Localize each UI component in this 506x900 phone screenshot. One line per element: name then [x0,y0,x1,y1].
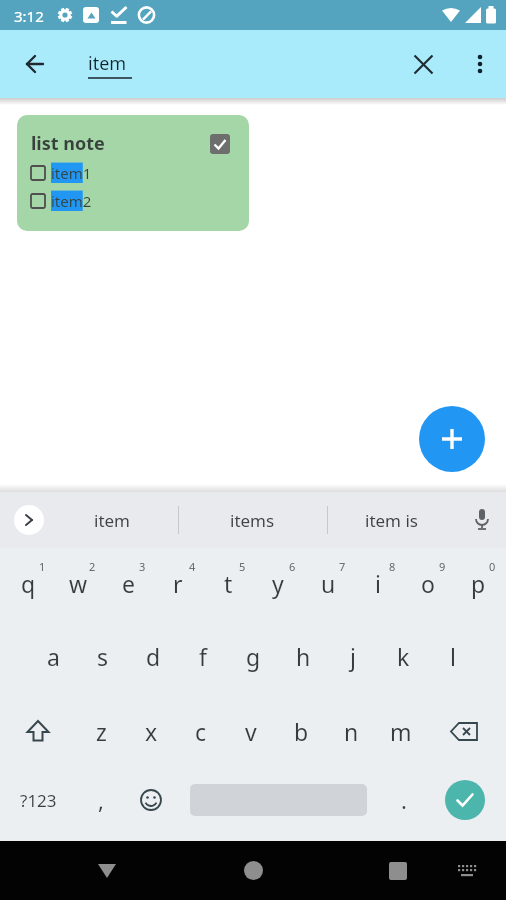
button[interactable] [376,841,420,900]
staticText: d [146,641,161,672]
button[interactable] [419,406,485,472]
staticText: p [471,568,486,599]
button[interactable]: d [128,625,178,687]
button[interactable]: l [428,625,478,687]
button[interactable]: . [379,769,429,831]
staticText: . [401,785,407,815]
button[interactable]: n [326,700,376,762]
staticText: c [195,716,207,747]
staticText: 9 [439,559,446,574]
staticText: i [375,568,381,599]
button[interactable]: x [126,700,176,762]
button[interactable]: ?123 [0,769,76,831]
staticText: v [245,716,257,747]
staticText: r [173,568,183,599]
staticText: 1 [39,559,46,574]
button[interactable]: g [228,625,278,687]
button[interactable]: s [78,625,128,687]
staticText: 3 [139,559,146,574]
staticText: m [390,716,412,747]
staticText: 2 [89,559,96,574]
button[interactable]: w [53,552,103,614]
button[interactable]: o [403,552,453,614]
staticText: k [397,641,410,672]
button[interactable] [0,700,76,762]
staticText: item is [365,509,418,532]
button[interactable] [126,769,176,831]
button[interactable] [14,505,44,535]
button[interactable]: z [76,700,126,762]
staticText: a [47,641,60,672]
button[interactable]: , [76,769,126,831]
button[interactable]: y [253,552,303,614]
button[interactable]: q [3,552,53,614]
button[interactable] [445,780,485,820]
staticText: item1 [51,163,92,183]
staticText: f [199,641,207,672]
staticText: w [69,568,88,599]
staticText: 5 [239,559,246,574]
staticText: 7 [339,559,346,574]
button[interactable] [231,841,275,900]
button[interactable]: c [176,700,226,762]
button[interactable]: item [62,492,162,548]
button[interactable]: e [103,552,153,614]
staticText: y [272,568,284,599]
button[interactable]: k [378,625,428,687]
staticText: item2 [51,191,92,211]
button[interactable]: p [453,552,503,614]
button[interactable]: b [276,700,326,762]
staticText: 0 [489,559,496,574]
staticText: n [344,716,359,747]
staticText: , [98,785,104,815]
staticText: x [145,716,158,747]
button[interactable] [426,700,502,762]
button[interactable]: items [202,492,302,548]
button[interactable]: i [353,552,403,614]
staticText: j [350,641,356,672]
staticText: h [296,641,311,672]
button[interactable]: a [28,625,78,687]
button[interactable]: m [376,700,426,762]
staticText: s [97,641,109,672]
staticText: l [450,641,456,672]
button[interactable]: v [226,700,276,762]
staticText: g [246,641,261,672]
button[interactable] [458,30,502,98]
staticText: 3:12 [14,6,44,26]
button[interactable]: j [328,625,378,687]
button[interactable]: u [303,552,353,614]
button[interactable]: h [278,625,328,687]
staticText: ?123 [20,789,57,812]
staticText: b [294,716,309,747]
button[interactable]: t [203,552,253,614]
staticText: items [230,509,275,532]
staticText: 6 [289,559,296,574]
staticText: q [21,568,36,599]
button[interactable] [85,841,129,900]
button[interactable]: f [178,625,228,687]
button[interactable]: r [153,552,203,614]
staticText: list note [31,131,105,156]
button[interactable]: list note [17,115,249,231]
button[interactable] [447,841,487,900]
staticText: z [96,716,107,747]
button[interactable]: item is [341,492,441,548]
staticText: 4 [189,559,196,574]
button[interactable] [401,30,445,98]
button[interactable] [13,30,57,98]
staticText: t [224,568,233,599]
staticText: item [94,509,131,532]
button[interactable] [460,492,504,548]
staticText: 8 [389,559,396,574]
staticText: e [122,568,135,599]
staticText: u [321,568,336,599]
staticText: o [421,568,435,599]
staticText: item [88,51,127,76]
